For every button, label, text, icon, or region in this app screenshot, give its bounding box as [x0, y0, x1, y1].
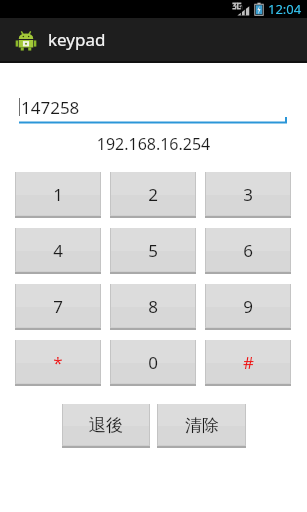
button[interactable]: 9 [205, 284, 291, 330]
staticText: 147258 [21, 96, 80, 119]
button[interactable]: 6 [205, 228, 291, 274]
staticText: 4 [53, 239, 63, 262]
staticText: 6 [243, 239, 253, 262]
button[interactable]: 1 [15, 172, 101, 218]
staticText: 8 [148, 295, 158, 318]
button[interactable]: 0 [110, 340, 196, 386]
staticText: 5 [148, 239, 158, 262]
button[interactable]: # [205, 340, 291, 386]
staticText: 清除 [185, 415, 219, 436]
button[interactable]: 7 [15, 284, 101, 330]
staticText: 7 [53, 295, 63, 318]
staticText: keypad [48, 28, 106, 51]
staticText: 退後 [89, 415, 123, 436]
staticText: 12:04 [268, 0, 302, 18]
staticText: 0 [148, 351, 158, 374]
button[interactable]: 4 [15, 228, 101, 274]
staticText: 192.168.16.254 [0, 133, 307, 155]
button[interactable]: 清除 [157, 404, 246, 448]
button[interactable]: 3 [205, 172, 291, 218]
button[interactable]: 147258 [19, 89, 287, 119]
other: App icon [15, 29, 37, 51]
staticText: # [243, 351, 254, 374]
button[interactable]: 2 [110, 172, 196, 218]
staticText: 9 [243, 295, 253, 318]
button[interactable]: 8 [110, 284, 196, 330]
button[interactable]: 5 [110, 228, 196, 274]
staticText: 3 [243, 183, 253, 206]
staticText: 2 [148, 183, 158, 206]
button[interactable]: 退後 [62, 404, 150, 448]
staticText: 1 [53, 183, 63, 206]
button[interactable]: * [15, 340, 101, 386]
staticText: * [53, 351, 63, 374]
